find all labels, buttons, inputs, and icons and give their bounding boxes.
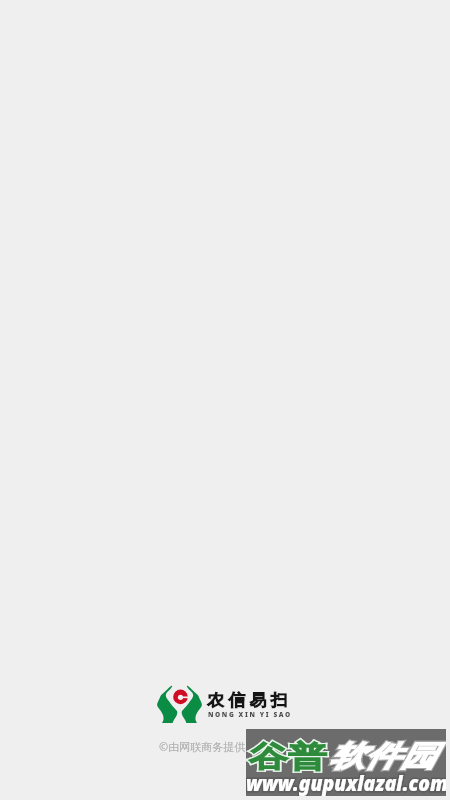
staticText: www.gupuxlazal.com bbox=[246, 769, 446, 796]
staticText: 农信易扫 bbox=[207, 690, 292, 711]
staticText: 软件园 bbox=[329, 738, 435, 774]
staticText: www.gupuxlazal.com bbox=[246, 769, 446, 796]
button[interactable]: 农信易扫 bbox=[157, 685, 292, 725]
staticText: ©由网联商务提供 bbox=[159, 739, 246, 754]
staticText: 谷普 bbox=[249, 738, 327, 775]
staticText: NONG XIN YI SAO bbox=[208, 710, 292, 719]
staticText: 软件园 bbox=[329, 738, 435, 774]
staticText: 谷普 bbox=[249, 738, 327, 775]
